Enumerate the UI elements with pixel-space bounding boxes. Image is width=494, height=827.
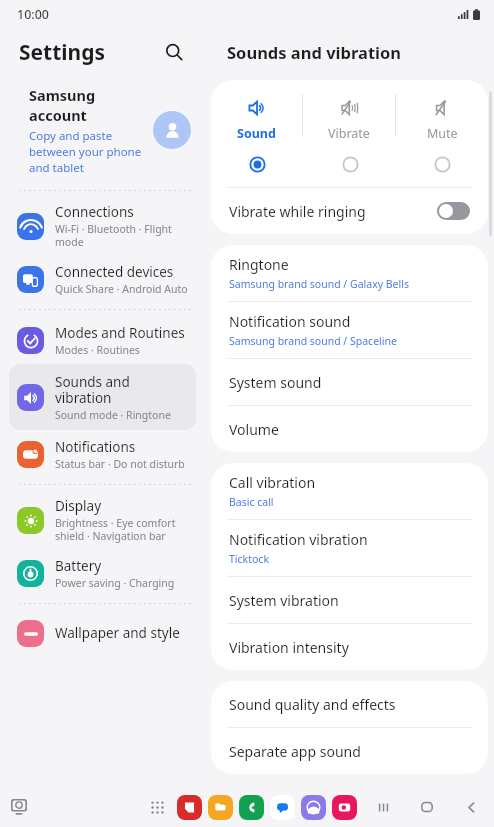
staticText: Copy and paste: [29, 128, 113, 144]
button[interactable]: Vibrate: [303, 94, 395, 144]
button[interactable]: Notifications: [9, 430, 196, 478]
staticText: Sounds and vibration: [227, 41, 402, 63]
button[interactable]: Apps: [143, 793, 171, 821]
button[interactable]: Notification vibration: [211, 520, 488, 577]
staticText: between your phone: [29, 144, 142, 160]
staticText: Vibrate while ringing: [229, 202, 437, 221]
button[interactable]: Vibrate while ringing toggle: [437, 202, 470, 220]
staticText: Call vibration: [229, 473, 316, 492]
button[interactable]: Files: [208, 795, 233, 820]
staticText: account: [29, 105, 87, 125]
button[interactable]: Messages: [270, 795, 295, 820]
staticText: Power saving · Charging: [55, 576, 175, 590]
staticText: Samsung brand sound / Galaxy Bells: [229, 277, 409, 291]
staticText: Notification sound: [229, 312, 351, 331]
staticText: Samsung brand sound / Spaceline: [229, 334, 397, 348]
staticText: Modes and Routines: [55, 324, 185, 342]
staticText: Sound mode · Ringtone: [55, 408, 171, 422]
button[interactable]: Connections: [9, 197, 196, 255]
staticText: Battery: [55, 557, 102, 575]
staticText: Wi-Fi · Bluetooth · Flight mode: [55, 222, 172, 249]
staticText: Status bar · Do not disturb: [55, 457, 185, 471]
button[interactable]: Mute: [396, 94, 488, 144]
staticText: Notifications: [55, 438, 136, 456]
staticText: Vibration intensity: [229, 638, 349, 657]
button[interactable]: Sounds and vibration: [9, 364, 196, 430]
staticText: 10:00: [17, 6, 50, 23]
staticText: Samsung: [29, 85, 96, 105]
staticText: Settings: [19, 38, 106, 67]
staticText: Sounds and vibration: [55, 373, 130, 407]
button[interactable]: Notification sound: [211, 302, 488, 359]
button[interactable]: Recents: [370, 794, 396, 820]
staticText: Modes · Routines: [55, 343, 140, 357]
button[interactable]: Camera: [332, 795, 357, 820]
button[interactable]: Search: [157, 35, 191, 69]
button[interactable]: Connected devices: [9, 255, 196, 303]
button[interactable]: Notes: [177, 795, 202, 820]
staticText: Connections: [55, 203, 134, 221]
button[interactable]: Internet: [301, 795, 326, 820]
staticText: Brightness · Eye comfort shield · Naviga…: [55, 516, 176, 543]
staticText: Ticktock: [229, 552, 269, 566]
staticText: Separate app sound: [229, 742, 361, 761]
staticText: Volume: [229, 420, 279, 439]
button[interactable]: Ringtone: [211, 245, 488, 302]
button[interactable]: Recent apps panel: [4, 792, 34, 822]
button[interactable]: Sound: [211, 94, 302, 144]
staticText: Notification vibration: [229, 530, 368, 549]
button[interactable]: Volume: [211, 406, 488, 452]
button[interactable]: [304, 151, 396, 177]
button[interactable]: Call vibration: [211, 463, 488, 520]
staticText: Ringtone: [229, 255, 289, 274]
staticText: Wallpaper and style: [55, 624, 180, 642]
button[interactable]: Back: [458, 794, 484, 820]
staticText: Basic call: [229, 495, 274, 509]
staticText: Display: [55, 497, 102, 515]
button[interactable]: Modes and Routines: [9, 316, 196, 364]
button[interactable]: Battery: [9, 549, 196, 597]
button[interactable]: Phone: [239, 795, 264, 820]
button[interactable]: Home: [414, 794, 440, 820]
button[interactable]: System sound: [211, 359, 488, 406]
button[interactable]: Vibration intensity: [211, 624, 488, 670]
button[interactable]: [211, 151, 304, 177]
staticText: Quick Share · Android Auto: [55, 282, 188, 296]
staticText: and tablet: [29, 160, 84, 176]
button[interactable]: Vibrate while ringing: [211, 188, 488, 234]
button[interactable]: Samsung: [0, 76, 205, 184]
staticText: Vibrate: [328, 125, 370, 142]
staticText: Connected devices: [55, 263, 174, 281]
button[interactable]: System vibration: [211, 577, 488, 624]
button[interactable]: Separate app sound: [211, 728, 488, 774]
button[interactable]: [396, 151, 488, 177]
button[interactable]: Wallpaper and style: [9, 610, 196, 656]
button[interactable]: Sound quality and effects: [211, 681, 488, 728]
staticText: System vibration: [229, 591, 339, 610]
staticText: Sound quality and effects: [229, 695, 396, 714]
staticText: Sound: [237, 125, 276, 142]
staticText: Mute: [427, 125, 458, 142]
staticText: System sound: [229, 373, 322, 392]
button[interactable]: Display: [9, 491, 196, 549]
